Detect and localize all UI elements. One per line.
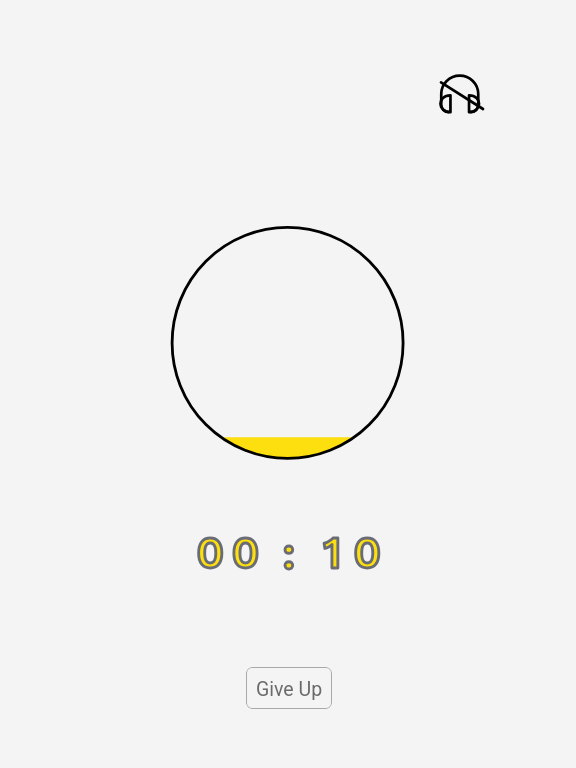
staticText: : bbox=[282, 528, 303, 580]
staticText: 1 bbox=[323, 527, 349, 579]
staticText: 0 bbox=[353, 527, 389, 579]
staticText: 0 bbox=[353, 527, 389, 579]
staticText: 00 bbox=[196, 527, 267, 579]
staticText: Give Up bbox=[256, 678, 323, 701]
staticText: 1 bbox=[323, 527, 349, 579]
button[interactable]: Mute sound bbox=[422, 57, 498, 133]
button[interactable]: Give Up bbox=[246, 667, 332, 709]
staticText: 00 bbox=[196, 527, 267, 579]
staticText: : bbox=[282, 528, 303, 580]
